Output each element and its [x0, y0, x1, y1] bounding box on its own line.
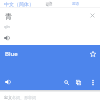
button[interactable]: 中文（简体）: [3, 0, 35, 8]
button[interactable]: Listen to translation: [3, 77, 13, 87]
button[interactable]: Swap languages: [44, 0, 54, 8]
staticText: Blue: [5, 50, 18, 58]
staticText: qīn: [4, 24, 10, 29]
button[interactable]: Listen to source text: [2, 33, 12, 43]
staticText: 英语: [72, 2, 80, 7]
button[interactable]: Copy: [73, 77, 83, 87]
button[interactable]: 英语: [63, 0, 89, 8]
staticText: 青: [5, 12, 12, 21]
button[interactable]: Blue: [5, 50, 18, 58]
button[interactable]: 青: [5, 12, 12, 21]
button[interactable]: Search: [61, 77, 71, 87]
staticText: 名词、形容词: [12, 95, 36, 100]
staticText: 中文（简体）: [4, 1, 34, 7]
button[interactable]: Save translation: [88, 49, 98, 59]
staticText: 定义: [4, 95, 12, 100]
button[interactable]: Clear text: [88, 11, 97, 20]
button[interactable]: More options: [88, 77, 98, 87]
button[interactable]: 定义: [4, 95, 12, 100]
